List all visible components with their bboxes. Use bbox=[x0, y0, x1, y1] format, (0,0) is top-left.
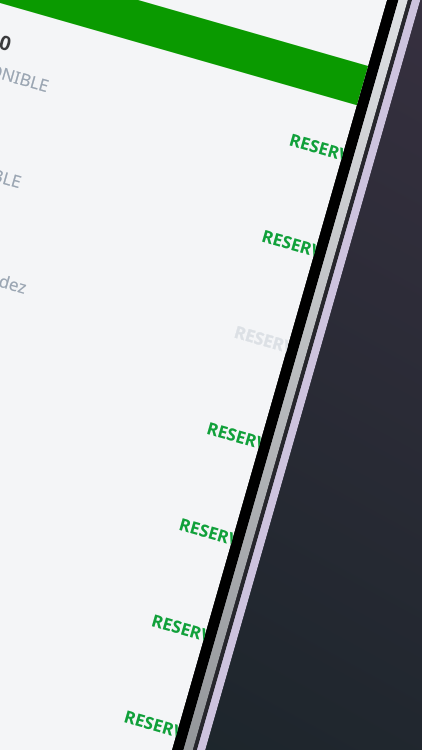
button[interactable]: 11:00 bbox=[0, 370, 247, 586]
staticText: RESERVAR bbox=[204, 416, 263, 453]
staticText: DISPONIBLE bbox=[0, 144, 25, 193]
staticText: RESERVAR bbox=[232, 320, 291, 357]
staticText: RESERVAR bbox=[122, 704, 181, 742]
button[interactable]: 12:30 bbox=[0, 658, 164, 750]
staticText: DISPONIBLE bbox=[0, 48, 52, 97]
button[interactable]: 10:00 bbox=[0, 177, 302, 394]
button[interactable]: 09:00 bbox=[0, 0, 357, 201]
staticText: RESERVAR bbox=[287, 128, 346, 165]
staticText: RESERVAR bbox=[259, 224, 319, 261]
staticText: RESERVAR bbox=[149, 608, 208, 646]
button[interactable]: 10:30 bbox=[0, 274, 274, 490]
button[interactable]: 09:30 bbox=[0, 81, 329, 298]
button[interactable]: 12:00 bbox=[0, 562, 192, 750]
button[interactable]: 11:30 bbox=[0, 466, 219, 682]
staticText: RESERVAR bbox=[177, 512, 236, 549]
staticText: Laura Fernandez bbox=[0, 240, 30, 299]
staticText: 09:00 bbox=[0, 17, 15, 57]
